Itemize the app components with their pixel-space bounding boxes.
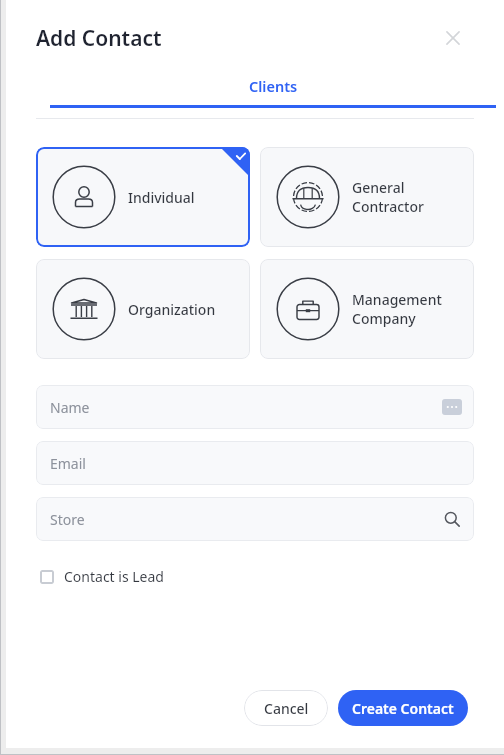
button[interactable]: General Contractor [260, 147, 474, 247]
staticText: Cancel [264, 699, 309, 718]
button[interactable]: Contact is Lead [36, 563, 168, 590]
staticText: Create Contact [352, 699, 454, 718]
button[interactable]: Organization [36, 259, 250, 359]
button[interactable]: Create Contact [338, 690, 468, 726]
staticText: Individual [128, 188, 195, 207]
staticText: Add Contact [36, 24, 162, 53]
staticText: Contact is Lead [64, 567, 164, 586]
staticText: Store [50, 510, 85, 529]
staticText: Organization [128, 300, 216, 319]
button[interactable]: More options [442, 399, 462, 415]
staticText: Clients [249, 76, 298, 96]
button[interactable]: Search [442, 509, 462, 529]
staticText: Management Company [352, 290, 442, 328]
button[interactable]: Clients [42, 76, 504, 108]
button[interactable]: Management Company [260, 259, 474, 359]
button[interactable]: Email [36, 441, 474, 485]
button[interactable]: Individual [36, 147, 250, 247]
button[interactable]: Name [36, 385, 474, 429]
staticText: General Contractor [352, 178, 424, 216]
button[interactable]: Close [436, 21, 470, 55]
staticText: Name [50, 398, 90, 417]
staticText: Email [50, 454, 86, 473]
button[interactable]: Store [36, 497, 474, 541]
button[interactable]: Cancel [244, 690, 328, 726]
